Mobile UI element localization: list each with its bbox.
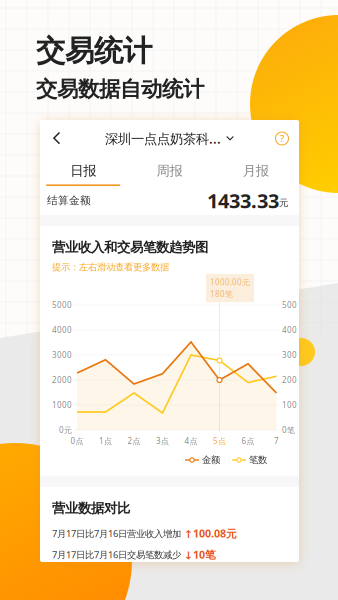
staticText: 2000 [52, 375, 72, 385]
staticText: 交易统计 [36, 33, 152, 69]
staticText: 5000 [52, 300, 72, 310]
staticText: 结算金额 [47, 194, 91, 207]
staticText: 7 [274, 436, 279, 446]
staticText: 提示：左右滑动查看更多数据 [52, 261, 169, 273]
staticText: ↓10笔 [184, 547, 216, 562]
staticText: 4000 [52, 325, 72, 335]
button[interactable]: Back [40, 120, 74, 156]
staticText: 7月17日比7月16日营业收入增加 [52, 527, 184, 540]
button[interactable]: Help [265, 120, 299, 156]
staticText: ↑100.08元 [184, 526, 237, 541]
button[interactable]: 深圳一点点奶茶科... [105, 120, 234, 156]
staticText: 300 [282, 350, 297, 360]
button[interactable]: 日报 [40, 157, 126, 186]
staticText: 交易数据自动统计 [36, 76, 204, 102]
staticText: 3点 [156, 436, 169, 446]
staticText: 200 [282, 375, 297, 385]
staticText: 3000 [52, 350, 72, 360]
staticText: 400 [282, 325, 297, 335]
staticText: 2点 [127, 436, 140, 446]
staticText: 营业收入和交易笔数趋势图 [52, 239, 208, 255]
staticText: 1000.00元 [210, 277, 250, 287]
staticText: 1点 [99, 436, 112, 446]
staticText: 7月17日比7月16日交易笔数减少 [52, 548, 184, 561]
staticText: 月报 [243, 162, 269, 179]
staticText: 0点 [70, 436, 83, 446]
staticText: 5点 [213, 436, 226, 446]
staticText: 500 [282, 300, 297, 310]
staticText: 100 [282, 400, 297, 410]
staticText: 1433.33 [207, 187, 279, 214]
staticText: 金额 [202, 454, 220, 466]
staticText: 4点 [184, 436, 197, 446]
staticText: 0笔 [282, 425, 295, 435]
button[interactable]: 月报 [213, 157, 299, 186]
staticText: 180笔 [210, 288, 233, 299]
staticText: 深圳一点点奶茶科... [105, 130, 221, 147]
staticText: 元 [279, 197, 288, 209]
staticText: 0元 [59, 425, 72, 435]
staticText: 6点 [241, 436, 254, 446]
staticText: 营业数据对比 [52, 500, 130, 516]
button[interactable]: 周报 [126, 157, 213, 186]
staticText: ? [280, 132, 284, 145]
staticText: 1000 [52, 400, 72, 410]
staticText: 笔数 [249, 454, 267, 466]
staticText: 周报 [156, 162, 182, 179]
staticText: 日报 [70, 162, 96, 179]
